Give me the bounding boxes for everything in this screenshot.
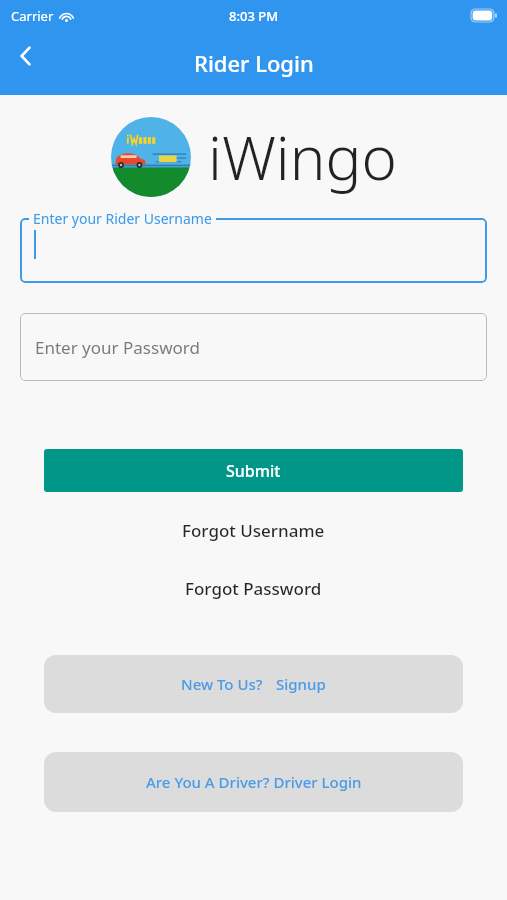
button[interactable]: Submit	[44, 449, 463, 492]
button[interactable]: Forgot Username	[0, 514, 507, 546]
button[interactable]: New To Us?	[44, 655, 463, 713]
button[interactable]: Forgot Password	[0, 572, 507, 604]
staticText: Signup	[276, 674, 326, 694]
staticText: New To Us?	[181, 674, 263, 694]
staticText: Rider Login	[194, 48, 314, 78]
staticText: Submit	[226, 460, 281, 482]
staticText: Enter your Password	[35, 336, 200, 359]
button[interactable]: Back	[0, 30, 52, 82]
staticText: 8:03 PM	[229, 7, 279, 25]
staticText: Forgot Username	[182, 519, 325, 542]
staticText: Forgot Password	[185, 577, 322, 600]
staticText: Carrier	[11, 7, 54, 25]
staticText: iWingo	[208, 116, 397, 198]
button[interactable]: Enter your Password	[20, 313, 487, 381]
button[interactable]: Are You A Driver? Driver Login	[44, 752, 463, 812]
staticText: Enter your Rider Username	[33, 209, 212, 228]
staticText: Are You A Driver? Driver Login	[146, 772, 362, 792]
button[interactable]	[20, 218, 487, 283]
